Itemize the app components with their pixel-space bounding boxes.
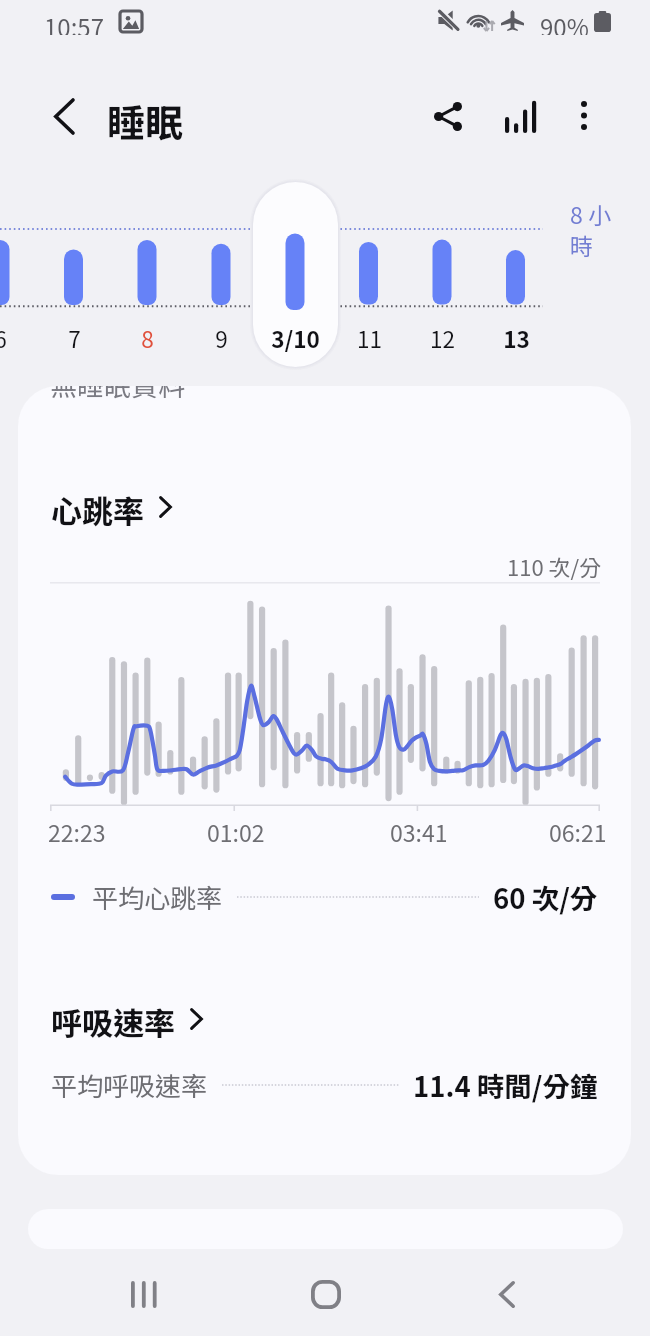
staticText: 心跳率	[51, 487, 144, 527]
button[interactable]: 平均心跳率	[51, 875, 598, 919]
button[interactable]: 呼吸速率	[51, 999, 203, 1039]
button[interactable]: Back	[40, 93, 86, 139]
staticText: 60 次/分	[493, 877, 598, 917]
button[interactable]	[250, 179, 341, 370]
button[interactable]: Home	[280, 1256, 372, 1332]
staticText: 8 小 時	[570, 197, 611, 261]
button[interactable]: 平均呼吸速率	[51, 1063, 598, 1107]
staticText: 12	[430, 322, 455, 352]
button[interactable]: Recent apps	[98, 1256, 190, 1332]
button[interactable]: 心跳率	[51, 487, 172, 527]
staticText: 8	[141, 322, 154, 352]
staticText: 6	[0, 322, 7, 352]
staticText: 無睡眠資料	[50, 386, 185, 404]
button[interactable]: Statistics	[498, 94, 542, 138]
staticText: 11.4 時間/分鐘	[413, 1065, 598, 1105]
button[interactable]: More options	[562, 93, 606, 137]
staticText: 06:21	[549, 815, 607, 848]
staticText: 11	[357, 322, 382, 352]
button[interactable]: Share	[426, 94, 470, 138]
staticText: 10:57	[44, 9, 104, 35]
button[interactable]: Back	[461, 1256, 553, 1332]
staticText: 110 次/分	[507, 550, 602, 582]
staticText: 01:02	[207, 815, 265, 848]
staticText: 平均呼吸速率	[51, 1066, 208, 1104]
staticText: 3/10	[271, 322, 320, 352]
staticText: 平均心跳率	[92, 878, 223, 916]
staticText: 22:23	[48, 815, 106, 848]
staticText: 90%	[540, 9, 589, 35]
staticText: 13	[503, 322, 530, 352]
staticText: 呼吸速率	[51, 999, 175, 1039]
staticText: 睡眠	[107, 93, 184, 148]
staticText: 03:41	[390, 815, 448, 848]
staticText: 7	[68, 322, 81, 352]
staticText: 9	[215, 322, 228, 352]
